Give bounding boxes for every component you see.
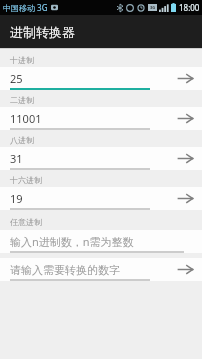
staticText: 任意进制 (10, 217, 42, 227)
button[interactable]: 请输入需要转换的数字 (0, 258, 202, 281)
staticText: 19 (10, 191, 23, 206)
button[interactable]: 11001 (0, 107, 202, 130)
button[interactable]: 25 (0, 67, 202, 90)
staticText: 11001 (10, 111, 42, 126)
staticText: 中国移动 3G (3, 2, 48, 13)
staticText: 31 (10, 151, 23, 166)
staticText: 二进制 (10, 95, 34, 105)
staticText: 请输入需要转换的数字 (10, 263, 120, 277)
button[interactable]: 转换 二进制 (168, 107, 202, 130)
staticText: 25 (10, 71, 23, 86)
button[interactable]: 转换 十进制 (168, 67, 202, 90)
button[interactable]: 输入n进制数，n需为整数 (0, 230, 202, 253)
button[interactable]: 进制转换器 (0, 15, 202, 48)
staticText: 十六进制 (10, 175, 42, 185)
staticText: 3G (150, 5, 156, 10)
button[interactable]: 19 (0, 187, 202, 210)
staticText: 八进制 (10, 135, 34, 145)
button[interactable]: 转换 八进制 (168, 147, 202, 170)
button[interactable]: 转换 (168, 258, 202, 281)
staticText: 十进制 (10, 55, 34, 65)
staticText: 18:00 (179, 2, 200, 13)
button[interactable]: 转换 十六进制 (168, 187, 202, 210)
button[interactable]: 31 (0, 147, 202, 170)
staticText: 进制转换器 (10, 24, 75, 40)
staticText: 输入n进制数，n需为整数 (10, 234, 134, 249)
